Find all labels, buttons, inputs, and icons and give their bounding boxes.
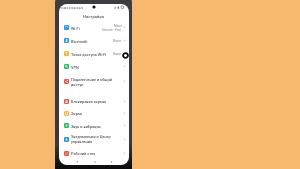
button[interactable]: Блокировка экрана [59,95,129,107]
staticText: Точка доступа Wi-Fi [71,52,113,56]
button[interactable]: Подключение и общий доступ [59,73,129,90]
button[interactable]: Bluetooth [59,34,129,47]
other: Pointer [122,52,129,59]
staticText: Блокировка экрана [71,99,123,103]
button[interactable]: Экран [59,107,129,119]
staticText: Рабочий стол [71,151,123,155]
staticText: Internet • Fast [102,28,122,32]
button[interactable]: Звук и вибрация [59,119,129,132]
staticText: Настройка [83,14,105,19]
staticText: Уведомления и Центр управления [71,134,123,144]
staticText: Выкл. [113,39,122,43]
staticText: VPN [71,65,123,69]
staticText: Bluetooth [71,39,113,43]
button[interactable]: Navigation bar [59,160,129,165]
staticText: Выкл. [113,52,122,56]
staticText: Экран [71,111,123,115]
button[interactable]: Wi-Fi [59,21,129,34]
button[interactable]: Рабочий стол [59,146,129,160]
staticText: Wi-Fi [71,26,102,30]
button[interactable]: Уведомления и Центр управления [59,132,129,146]
staticText: Подключение и общий доступ [71,77,123,87]
staticText: Mioxi [114,24,122,28]
button[interactable]: Точка доступа Wi-Fi [59,47,129,60]
button[interactable]: VPN [59,60,129,73]
staticText: Звук и вибрация [71,124,123,128]
